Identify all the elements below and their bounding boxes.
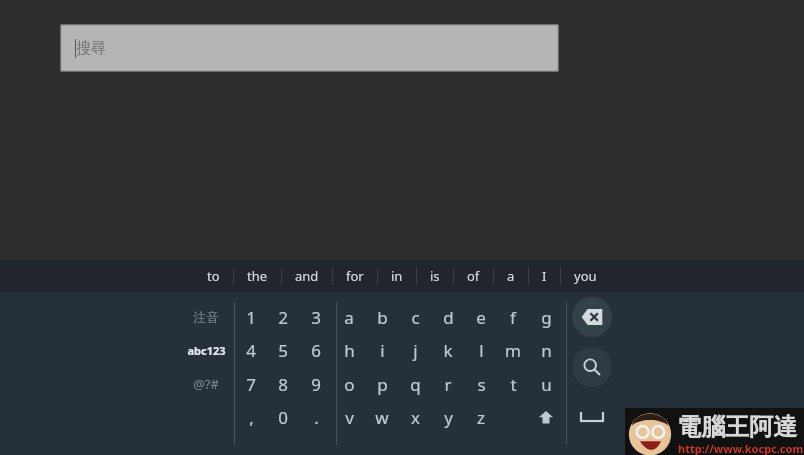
button[interactable]: 8 (267, 368, 299, 400)
staticText: 8 (278, 373, 288, 396)
staticText: @?# (193, 375, 219, 393)
button[interactable]: 6 (300, 334, 332, 366)
button[interactable]: o (333, 368, 365, 400)
staticText: h (344, 339, 355, 362)
button[interactable]: Search (572, 347, 612, 387)
button[interactable]: 2 (267, 301, 299, 333)
button[interactable]: d (432, 301, 464, 333)
button[interactable]: l (465, 334, 497, 366)
button[interactable]: abc123 (172, 334, 240, 366)
staticText: 2 (278, 306, 288, 329)
button[interactable]: for (333, 260, 377, 292)
button[interactable]: of (454, 260, 493, 292)
button[interactable]: 5 (267, 334, 299, 366)
button[interactable]: g (530, 301, 562, 333)
button[interactable]: 1 (235, 301, 267, 333)
button[interactable]: x (399, 401, 431, 433)
staticText: you (574, 267, 597, 285)
staticText: m (505, 339, 521, 362)
button[interactable]: f (497, 301, 529, 333)
button[interactable]: v (333, 401, 365, 433)
staticText: . (314, 406, 319, 429)
staticText: r (444, 373, 452, 396)
button[interactable]: s (465, 368, 497, 400)
button[interactable]: 搜尋 (61, 25, 558, 71)
staticText: y (444, 406, 453, 429)
button[interactable]: Space (566, 401, 618, 433)
button[interactable]: , (235, 401, 267, 433)
staticText: g (541, 306, 552, 329)
button[interactable]: u (530, 368, 562, 400)
button[interactable]: m (497, 334, 529, 366)
button[interactable]: 4 (235, 334, 267, 366)
button[interactable]: t (497, 368, 529, 400)
button[interactable]: b (366, 301, 398, 333)
staticText: 6 (311, 339, 321, 362)
button[interactable]: r (432, 368, 464, 400)
staticText: d (443, 306, 454, 329)
button[interactable]: h (333, 334, 365, 366)
button[interactable]: 注音 (172, 301, 240, 333)
button[interactable]: the (234, 260, 281, 292)
staticText: j (413, 339, 418, 362)
staticText: a (507, 267, 515, 285)
button[interactable]: q (399, 368, 431, 400)
button[interactable]: w (366, 401, 398, 433)
staticText: 7 (246, 373, 256, 396)
staticText: u (541, 373, 552, 396)
button[interactable]: I (529, 260, 560, 292)
button[interactable]: 3 (300, 301, 332, 333)
staticText: p (377, 373, 388, 396)
staticText: and (295, 267, 319, 285)
button[interactable]: i (366, 334, 398, 366)
button[interactable]: @?# (172, 368, 240, 400)
button[interactable]: Shift (530, 401, 562, 433)
button[interactable]: y (432, 401, 464, 433)
button[interactable]: 0 (267, 401, 299, 433)
staticText: the (247, 267, 268, 285)
staticText: z (477, 406, 485, 429)
staticText: l (479, 339, 484, 362)
staticText: e (476, 306, 486, 329)
staticText: a (344, 306, 354, 329)
staticText: w (375, 406, 389, 429)
staticText: k (443, 339, 453, 362)
staticText: q (410, 373, 421, 396)
staticText: 3 (311, 306, 321, 329)
staticText: 0 (278, 406, 288, 429)
staticText: 1 (246, 306, 256, 329)
button[interactable]: c (399, 301, 431, 333)
staticText: n (541, 339, 552, 362)
button[interactable]: to (194, 260, 233, 292)
staticText: s (477, 373, 486, 396)
staticText: 注音 (193, 309, 219, 325)
button[interactable]: a (494, 260, 528, 292)
button[interactable]: p (366, 368, 398, 400)
staticText: of (467, 267, 480, 285)
staticText: for (346, 267, 364, 285)
button[interactable]: k (432, 334, 464, 366)
staticText: to (207, 267, 220, 285)
button[interactable]: a (333, 301, 365, 333)
staticText: , (249, 406, 254, 429)
button[interactable]: you (561, 260, 610, 292)
staticText: c (411, 306, 420, 329)
staticText: abc123 (187, 343, 226, 358)
button[interactable]: is (417, 260, 453, 292)
button[interactable]: n (530, 334, 562, 366)
button[interactable]: 9 (300, 368, 332, 400)
button[interactable]: and (282, 260, 332, 292)
button[interactable]: Backspace (572, 297, 612, 337)
staticText: http://www.kocpc.com.tw (678, 441, 804, 455)
staticText: i (380, 339, 385, 362)
button[interactable]: . (300, 401, 332, 433)
button[interactable]: z (465, 401, 497, 433)
button[interactable]: in (378, 260, 416, 292)
button[interactable]: e (465, 301, 497, 333)
staticText: v (345, 406, 354, 429)
staticText: t (510, 373, 517, 396)
button[interactable]: 7 (235, 368, 267, 400)
staticText: o (344, 373, 355, 396)
staticText: f (510, 306, 516, 329)
button[interactable]: j (399, 334, 431, 366)
